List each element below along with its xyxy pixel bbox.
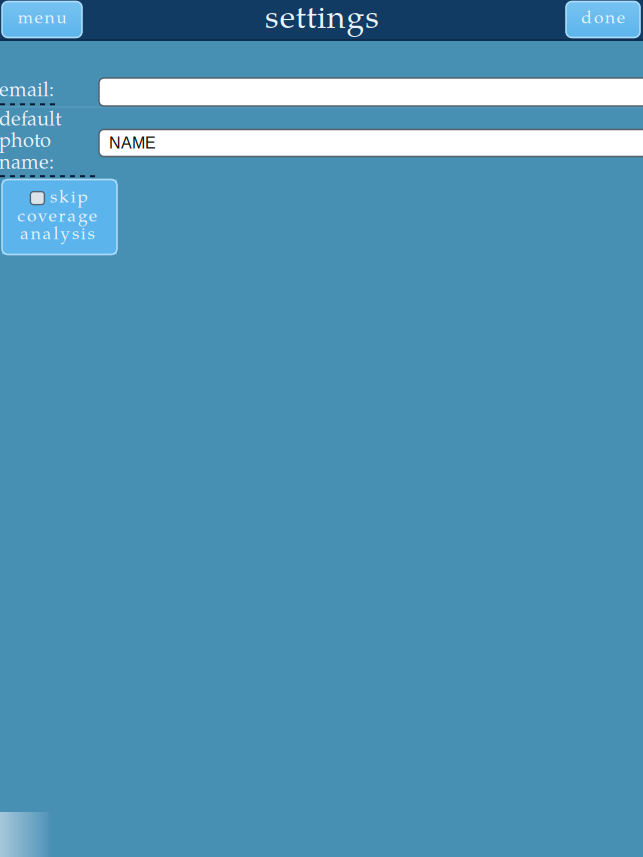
button[interactable]: default photo name [99, 129, 643, 156]
button[interactable]: email [99, 78, 643, 106]
button[interactable]: skip [2, 179, 117, 254]
staticText: photo [0, 132, 51, 153]
staticText: skip [50, 190, 87, 207]
button[interactable]: menu [2, 1, 82, 37]
staticText: analysis [20, 227, 95, 244]
staticText: name: [0, 154, 54, 174]
staticText: coverage [17, 209, 97, 226]
staticText: done [581, 11, 625, 28]
staticText: menu [18, 11, 66, 28]
staticText: default [0, 111, 62, 131]
staticText: settings [265, 5, 379, 37]
staticText: email: [0, 82, 54, 102]
staticText: NAME [109, 134, 156, 152]
button[interactable]: done [566, 1, 640, 37]
